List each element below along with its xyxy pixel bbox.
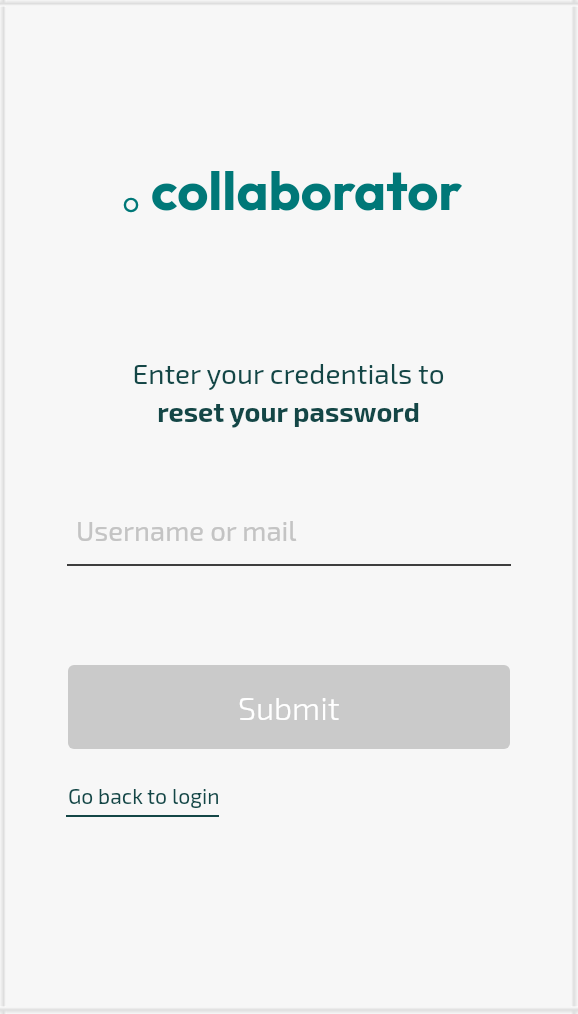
button[interactable]: Username or mail: [67, 506, 511, 566]
staticText: Submit: [238, 688, 340, 726]
staticText: collaborator: [151, 156, 463, 224]
staticText: reset your password: [6, 395, 571, 1014]
staticText: Username or mail: [76, 514, 297, 547]
staticText: Enter your credentials to: [6, 356, 571, 1014]
staticText: Go back to login: [68, 783, 220, 808]
button[interactable]: Submit: [68, 665, 510, 749]
button[interactable]: Go back to login: [66, 783, 219, 817]
